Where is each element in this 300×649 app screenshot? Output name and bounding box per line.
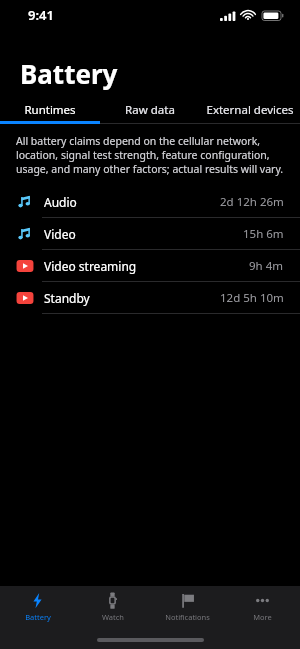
staticText: 2d 12h 26m (220, 194, 284, 210)
staticText: Battery (20, 56, 118, 91)
button[interactable]: More (225, 592, 300, 631)
button[interactable]: Standby (0, 282, 300, 313)
staticText: 12d 5h 10m (220, 290, 284, 306)
button[interactable]: External devices (200, 99, 300, 121)
staticText: Battery (25, 612, 51, 622)
staticText: Audio (44, 194, 77, 210)
staticText: Video (44, 226, 76, 242)
button[interactable]: Audio (0, 186, 300, 217)
staticText: Video streaming (44, 258, 137, 274)
button[interactable]: Video streaming (0, 250, 300, 281)
staticText: More (253, 612, 272, 622)
staticText: External devices (206, 102, 294, 118)
button[interactable]: Raw data (100, 99, 200, 121)
staticText: All battery claims depend on the cellula… (16, 134, 284, 176)
staticText: Raw data (125, 102, 175, 118)
button[interactable]: Battery (0, 592, 75, 631)
staticText: 15h 6m (243, 226, 284, 242)
staticText: Notifications (165, 612, 210, 622)
staticText: 9h 4m (249, 258, 284, 274)
button[interactable]: Notifications (150, 592, 225, 631)
staticText: 9:41 (28, 6, 54, 24)
button[interactable]: Video (0, 218, 300, 249)
staticText: Watch (102, 612, 124, 622)
staticText: Runtimes (24, 102, 76, 118)
button[interactable]: Runtimes (0, 99, 100, 121)
staticText: Standby (44, 290, 90, 306)
button[interactable]: Watch (75, 592, 150, 631)
